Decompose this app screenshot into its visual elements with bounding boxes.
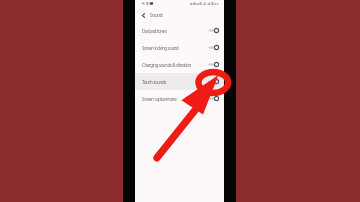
button[interactable]: Charging sounds & vibration xyxy=(135,56,224,73)
button[interactable]: Screen capture tone xyxy=(135,90,224,107)
button[interactable]: Screen locking sound xyxy=(135,39,224,56)
staticText: Screen capture tone xyxy=(142,96,177,102)
button[interactable]: Toggle Touch sounds xyxy=(209,78,219,85)
button[interactable]: Toggle Charging sounds & vibration xyxy=(209,61,219,68)
button[interactable]: Dial pad tones xyxy=(135,22,224,39)
staticText: Charging sounds & vibration xyxy=(142,62,191,68)
staticText: Dial pad tones xyxy=(142,28,167,34)
staticText: Sound xyxy=(150,12,163,19)
button[interactable]: Back xyxy=(139,11,148,20)
button[interactable]: Toggle Dial pad tones xyxy=(209,27,219,34)
button[interactable]: Touch sounds xyxy=(135,73,224,90)
button[interactable]: Toggle Screen capture tone xyxy=(209,95,219,102)
staticText: Screen locking sound xyxy=(142,45,179,51)
button[interactable]: Toggle Screen locking sound xyxy=(209,44,219,51)
staticText: Touch sounds xyxy=(142,79,166,85)
